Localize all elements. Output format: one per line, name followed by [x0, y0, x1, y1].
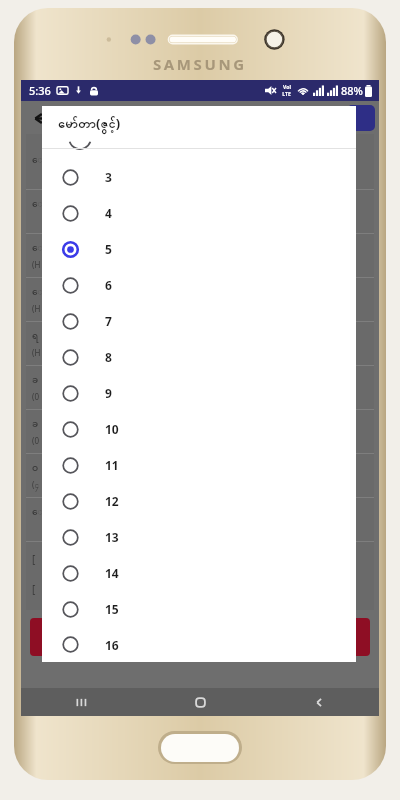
- button[interactable]: Back: [260, 688, 379, 716]
- staticText: ရ: [32, 327, 39, 347]
- staticText: [: [32, 582, 36, 596]
- staticText: 12: [105, 493, 119, 509]
- button[interactable]: 10: [42, 411, 356, 447]
- button[interactable]: 8: [42, 339, 356, 375]
- staticText: (0: [32, 391, 39, 402]
- button[interactable]: Home: [141, 688, 260, 716]
- staticText: (၄: [32, 479, 39, 491]
- staticText: 9: [105, 385, 112, 401]
- staticText: 88%: [341, 83, 363, 98]
- staticText: (0: [32, 435, 39, 446]
- staticText: 6: [105, 277, 112, 293]
- staticText: မော်တာ(ဇွင့်): [58, 114, 121, 134]
- staticText: 15: [105, 601, 119, 617]
- staticText: 7: [105, 313, 112, 329]
- staticText: [: [32, 552, 36, 566]
- staticText: 14: [105, 565, 119, 581]
- button[interactable]: 6: [42, 267, 356, 303]
- staticText: SAMSUNG: [153, 54, 247, 74]
- staticText: (H: [32, 259, 41, 270]
- staticText: ေ: [32, 151, 43, 171]
- staticText: (H: [32, 347, 41, 358]
- button[interactable]: 14: [42, 555, 356, 591]
- button[interactable]: Home: [158, 731, 242, 764]
- button[interactable]: 16: [42, 627, 356, 662]
- staticText: ေ: [32, 503, 43, 523]
- staticText: 5:36: [29, 83, 51, 98]
- button[interactable]: 12: [42, 483, 356, 519]
- staticText: ေ: [32, 195, 43, 215]
- button[interactable]: 11: [42, 447, 356, 483]
- staticText: ဝ: [32, 459, 39, 479]
- button[interactable]: 13: [42, 519, 356, 555]
- staticText: (H: [32, 303, 41, 314]
- button[interactable]: 9: [42, 375, 356, 411]
- button[interactable]: Recents: [21, 688, 141, 716]
- staticText: LTE: [282, 91, 291, 98]
- staticText: ေ: [32, 283, 43, 303]
- staticText: ခ: [32, 371, 39, 391]
- staticText: 4: [105, 205, 112, 221]
- staticText: 13: [105, 529, 119, 545]
- button[interactable]: 3: [42, 159, 356, 195]
- button[interactable]: [347, 105, 375, 131]
- staticText: ခ: [32, 415, 39, 435]
- staticText: 5: [105, 241, 112, 257]
- button[interactable]: Back: [27, 103, 57, 133]
- staticText: ေ: [32, 239, 43, 259]
- button[interactable]: 7: [42, 303, 356, 339]
- staticText: 16: [105, 637, 119, 653]
- staticText: 3: [105, 169, 112, 185]
- button[interactable]: [30, 618, 370, 656]
- staticText: 11: [105, 457, 119, 473]
- button[interactable]: 4: [42, 195, 356, 231]
- staticText: 10: [105, 421, 119, 437]
- button[interactable]: 15: [42, 591, 356, 627]
- button[interactable]: 5: [42, 231, 356, 267]
- staticText: 8: [105, 349, 112, 365]
- staticText: Vol: [283, 84, 291, 91]
